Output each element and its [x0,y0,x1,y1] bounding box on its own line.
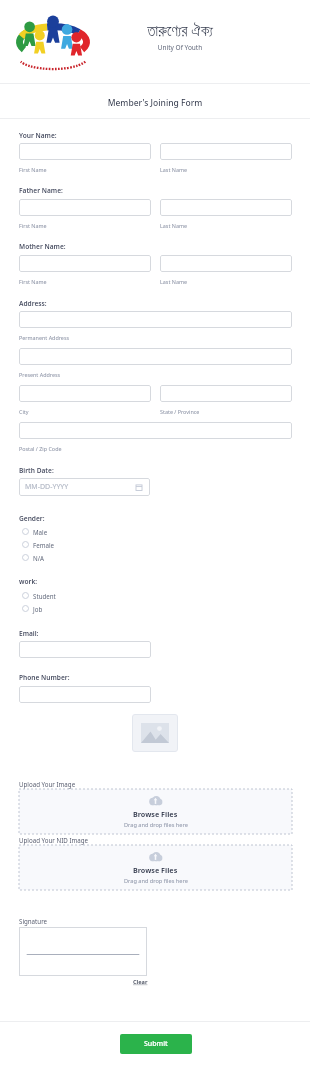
staticText: Male [33,528,48,536]
staticText: Last Name [160,278,187,285]
staticText: Drag and drop files here [124,877,188,885]
button[interactable]: Job [22,603,43,614]
button[interactable] [160,199,292,216]
staticText: work: [19,577,38,586]
staticText: Last Name [160,222,187,229]
button[interactable] [19,686,151,703]
button[interactable]: MM-DD-YYYY [19,478,150,496]
staticText: Postal / Zip Code [19,445,62,452]
staticText: Mother Name: [19,242,66,251]
staticText: Phone Number: [19,673,70,682]
staticText: State / Province [160,408,200,415]
staticText: First Name [19,278,47,285]
button[interactable]: Clear [131,976,150,988]
staticText: Permanent Address [19,334,70,341]
button[interactable] [19,641,151,658]
button[interactable]: N/A [22,552,44,563]
button[interactable]: Browse Files [19,789,292,834]
button[interactable]: Submit [120,1034,192,1054]
other: Image placeholder [132,714,178,752]
button[interactable] [160,143,292,160]
staticText: Signature [19,917,48,925]
staticText: Drag and drop files here [124,821,188,829]
button[interactable] [19,927,147,976]
staticText: Last Name [160,166,187,173]
staticText: Unity Of Youth [110,43,250,52]
button[interactable]: Student [22,590,56,601]
button[interactable]: Browse Files [19,845,292,890]
staticText: City [19,408,29,415]
staticText: তারুণ্যের ঐক্য [110,20,250,40]
button[interactable] [160,385,292,402]
staticText: Submit [144,1039,168,1049]
staticText: Gender: [19,514,45,523]
staticText: N/A [33,554,44,562]
button[interactable] [19,422,292,439]
button[interactable] [19,199,151,216]
staticText: Father Name: [19,186,63,195]
button[interactable] [19,311,292,328]
button[interactable]: Female [22,539,55,550]
staticText: Job [33,605,43,613]
staticText: Female [33,541,55,549]
button[interactable] [19,255,151,272]
button[interactable] [19,348,292,365]
button[interactable] [19,143,151,160]
staticText: Email: [19,629,39,638]
staticText: MM-DD-YYYY [25,482,69,492]
staticText: Browse Files [133,865,178,875]
staticText: Upload Your NID Image [19,836,89,844]
staticText: First Name [19,166,47,173]
staticText: Student [33,592,56,600]
staticText: Present Address [19,371,61,378]
button[interactable] [160,255,292,272]
staticText: Upload Your Image [19,780,76,788]
button[interactable] [19,385,151,402]
staticText: Birth Date: [19,466,54,475]
staticText: First Name [19,222,47,229]
button[interactable]: Male [22,526,48,537]
staticText: Clear [133,978,148,986]
staticText: Address: [19,299,47,308]
staticText: Your Name: [19,131,57,140]
staticText: Member's Joining Form [0,97,310,109]
staticText: Browse Files [133,809,178,819]
